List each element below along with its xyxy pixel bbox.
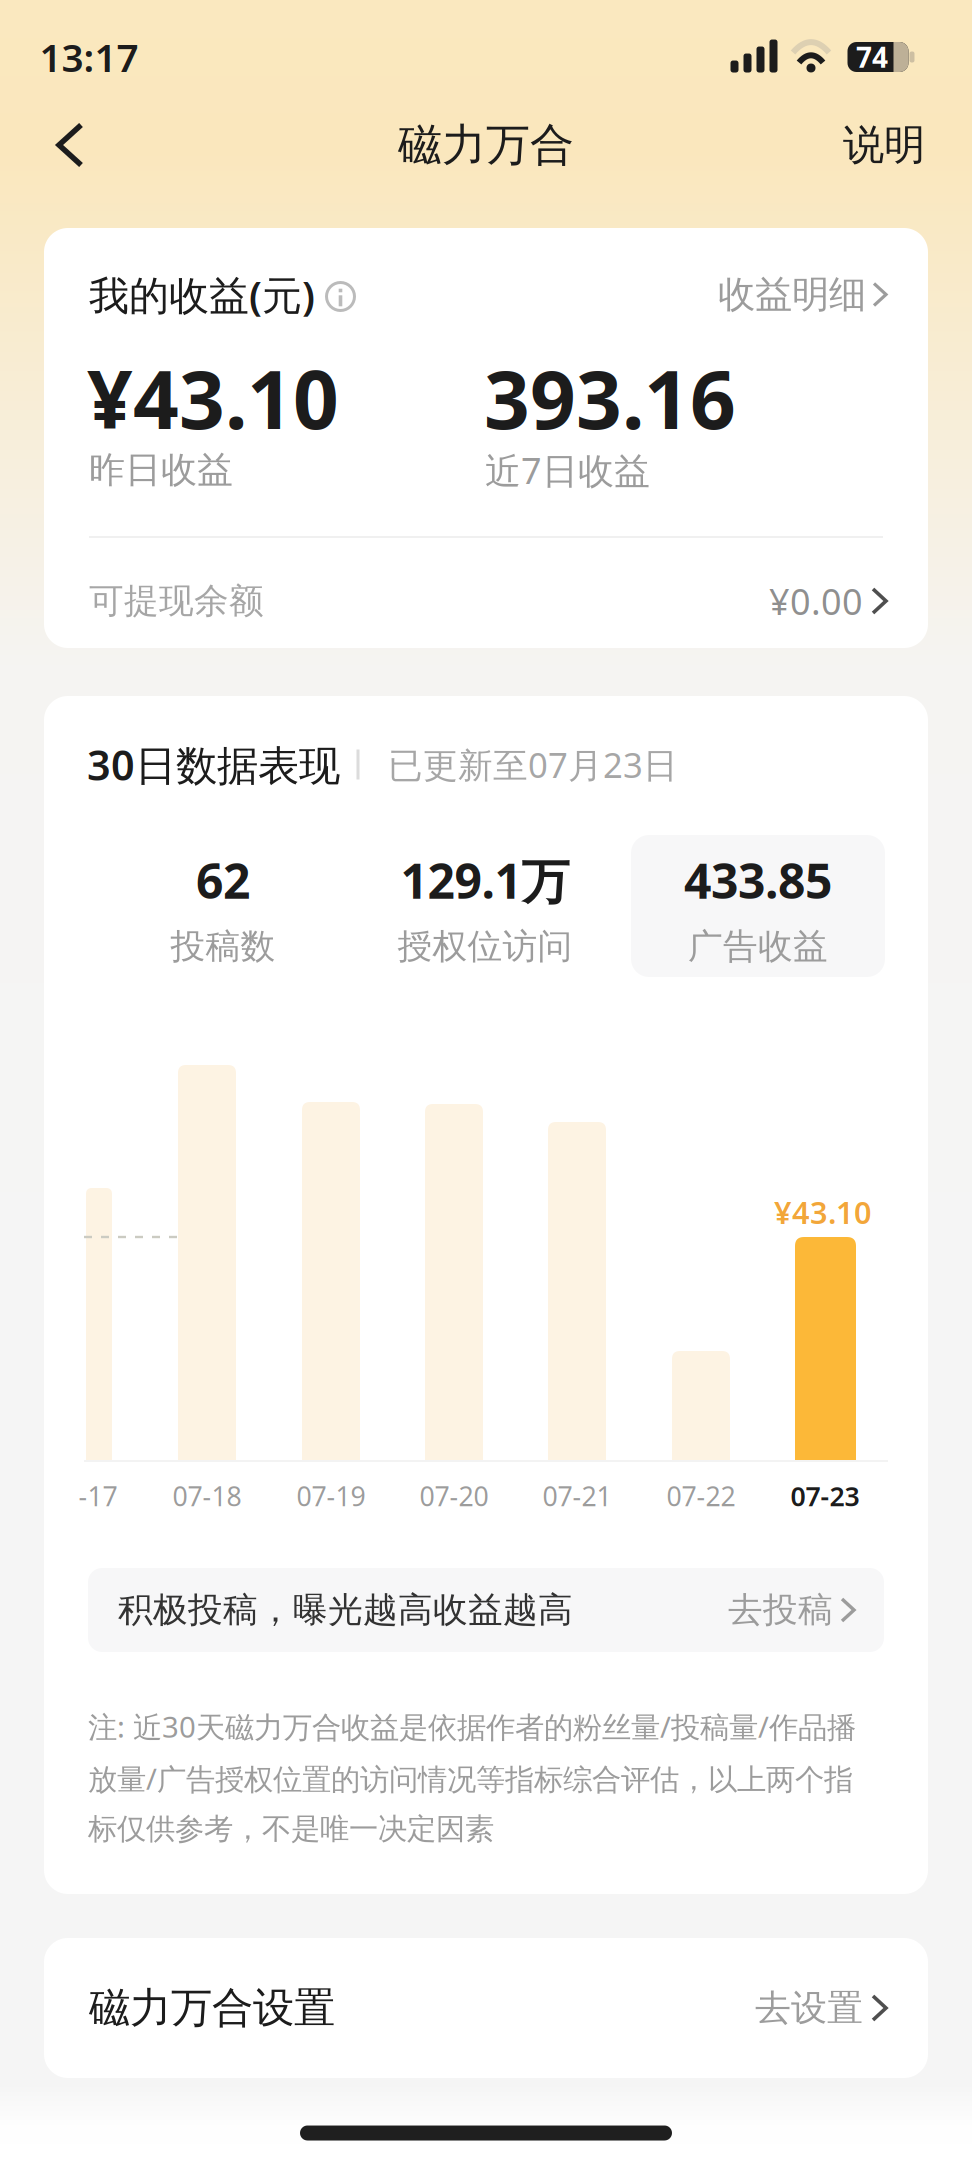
staticText: 30日数据表现 — [87, 737, 340, 792]
staticText: 62 — [196, 848, 250, 912]
button[interactable]: 收益明细 — [646, 264, 886, 324]
staticText: 去设置 — [755, 1986, 863, 2030]
staticText: 积极投稿，曝光越高收益越高 — [118, 1589, 573, 1631]
button[interactable]: 积极投稿，曝光越高收益越高 — [88, 1568, 884, 1652]
button[interactable]: 可提现余额 — [44, 564, 928, 638]
staticText: 129.1万 — [400, 848, 569, 912]
staticText: 去投稿 — [728, 1589, 833, 1631]
staticText: 393.16 — [484, 345, 736, 451]
staticText: 收益明细 — [718, 272, 866, 317]
staticText: 注: 近30天磁力万合收益是依据作者的粉丝量/投稿量/作品播放量/广告授权位置的… — [88, 1707, 856, 1847]
staticText: 授权位访问 — [397, 925, 572, 968]
button[interactable]: Back — [35, 110, 105, 180]
staticText: -17 — [78, 1478, 117, 1514]
staticText: 07-19 — [296, 1478, 365, 1514]
staticText: 广告收益 — [688, 925, 828, 968]
staticText: 已更新至07月23日 — [388, 741, 678, 787]
staticText: ¥0.00 — [769, 577, 863, 625]
staticText: 昨日收益 — [89, 448, 233, 492]
button[interactable]: 磁力万合设置 — [44, 1938, 928, 2078]
staticText: 磁力万合设置 — [89, 1983, 335, 2033]
staticText: 07-22 — [666, 1478, 735, 1514]
staticText: 我的收益(元) — [89, 268, 315, 321]
button[interactable]: 说明 — [805, 113, 925, 177]
staticText: 近7日收益 — [485, 446, 650, 494]
staticText: 说明 — [843, 120, 925, 170]
staticText: 07-18 — [172, 1478, 241, 1514]
staticText: 07-21 — [542, 1478, 611, 1514]
staticText: 磁力万合 — [398, 118, 574, 172]
staticText: ¥43.10 — [774, 1192, 872, 1232]
button[interactable]: 收益说明 — [318, 274, 362, 318]
staticText: 433.85 — [684, 848, 832, 912]
staticText: 13:17 — [39, 31, 138, 83]
staticText: 07-20 — [419, 1478, 488, 1514]
staticText: 74 — [856, 38, 888, 76]
staticText: 投稿数 — [170, 925, 275, 968]
staticText: ¥43.10 — [87, 345, 339, 451]
staticText: 可提现余额 — [89, 580, 264, 622]
staticText: 07-23 — [790, 1478, 859, 1514]
